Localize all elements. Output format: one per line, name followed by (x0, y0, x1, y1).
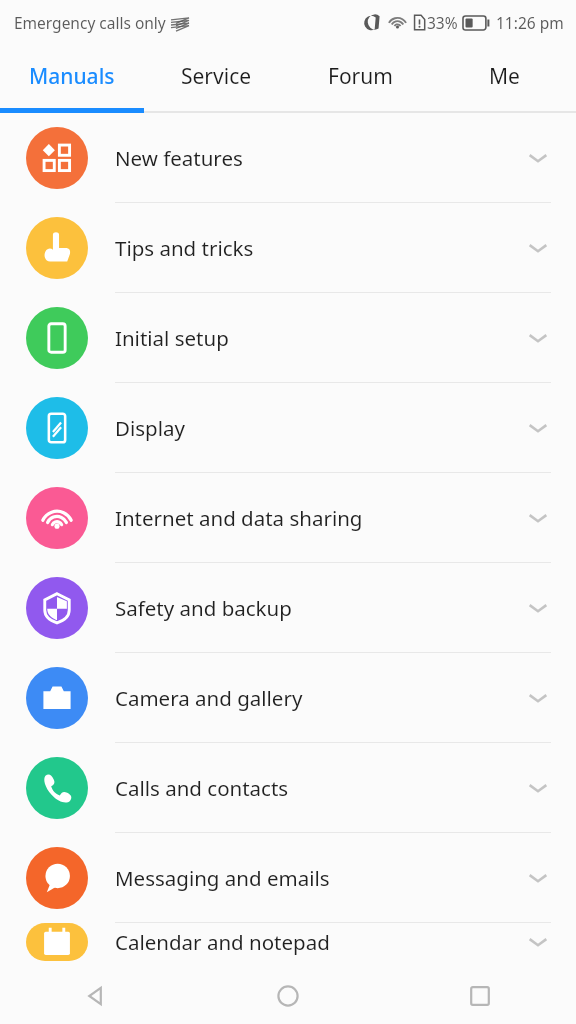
staticText: Forum (328, 62, 393, 91)
staticText: 11:26 pm (496, 12, 564, 33)
staticText: Safety and backup (115, 594, 292, 622)
staticText: Calls and contacts (115, 774, 289, 802)
button[interactable]: Manuals (0, 45, 144, 108)
staticText: 33% (427, 12, 458, 33)
staticText: Tips and tricks (115, 234, 254, 262)
button[interactable]: Internet and data sharing (0, 473, 576, 563)
button[interactable]: Messaging and emails (0, 833, 576, 923)
staticText: Internet and data sharing (115, 504, 363, 532)
other: Expand (525, 510, 551, 526)
staticText: Messaging and emails (115, 864, 330, 892)
staticText: Emergency calls only (14, 12, 166, 33)
other: Expand (525, 150, 551, 166)
staticText: Service (181, 62, 252, 91)
other: Expand (525, 934, 551, 950)
staticText: Me (489, 62, 520, 91)
button[interactable]: Me (432, 45, 576, 108)
button[interactable]: Service (144, 45, 288, 108)
staticText: Display (115, 414, 185, 442)
button[interactable]: Forum (288, 45, 432, 108)
staticText: New features (115, 144, 243, 172)
button[interactable]: Display (0, 383, 576, 473)
other: Expand (525, 240, 551, 256)
staticText: Calendar and notepad (115, 928, 330, 956)
staticText: Camera and gallery (115, 684, 303, 712)
button[interactable]: Calendar and notepad (0, 923, 576, 961)
button[interactable]: Tips and tricks (0, 203, 576, 293)
other: Expand (525, 780, 551, 796)
staticText: Manuals (29, 62, 115, 91)
button[interactable]: Safety and backup (0, 563, 576, 653)
other: Expand (525, 690, 551, 706)
button[interactable]: Recent apps (384, 968, 576, 1024)
button[interactable]: Back (0, 968, 192, 1024)
button[interactable]: Camera and gallery (0, 653, 576, 743)
button[interactable]: Initial setup (0, 293, 576, 383)
other: Expand (525, 600, 551, 616)
button[interactable]: Calls and contacts (0, 743, 576, 833)
button[interactable]: Home (192, 968, 384, 1024)
button[interactable]: New features (0, 113, 576, 203)
staticText: Initial setup (115, 324, 229, 352)
other: Expand (525, 330, 551, 346)
other: Expand (525, 870, 551, 886)
other: Expand (525, 420, 551, 436)
